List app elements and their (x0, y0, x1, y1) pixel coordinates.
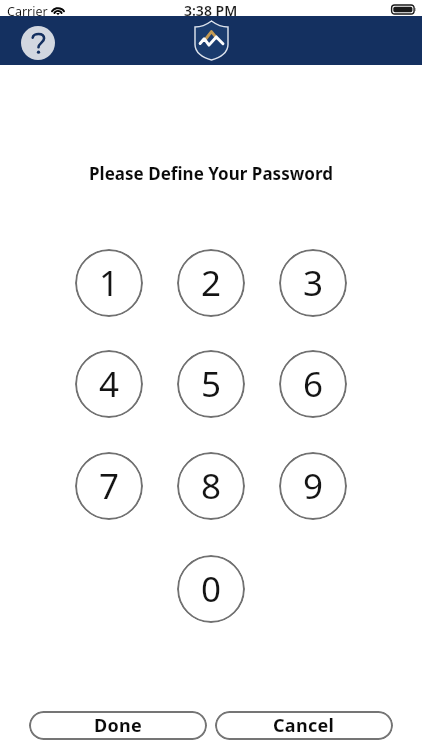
staticText: Please Define Your Password (0, 162, 422, 185)
button[interactable]: 2 (177, 249, 245, 317)
button[interactable]: Help (21, 26, 55, 60)
staticText: 0 (201, 565, 222, 613)
staticText: Cancel (273, 713, 335, 738)
button[interactable]: 5 (177, 350, 245, 418)
button[interactable]: Cancel (215, 711, 393, 740)
staticText: 6 (303, 360, 324, 408)
staticText: 3 (303, 259, 324, 307)
staticText: 3:38 PM (184, 1, 238, 17)
button[interactable]: 1 (75, 249, 143, 317)
button[interactable]: 4 (75, 350, 143, 418)
staticText: 2 (201, 259, 222, 307)
button[interactable]: 9 (279, 452, 347, 520)
staticText: 5 (201, 360, 222, 408)
button[interactable]: 6 (279, 350, 347, 418)
staticText: Done (94, 713, 143, 738)
button[interactable]: 7 (75, 452, 143, 520)
staticText: 4 (99, 360, 120, 408)
staticText: 7 (99, 462, 120, 510)
button[interactable]: 8 (177, 452, 245, 520)
staticText: Carrier (7, 3, 48, 19)
button[interactable]: 0 (177, 555, 245, 623)
staticText: 9 (303, 462, 324, 510)
button[interactable]: 3 (279, 249, 347, 317)
button[interactable]: Done (29, 711, 207, 740)
staticText: 8 (201, 462, 222, 510)
staticText: 1 (99, 259, 120, 307)
